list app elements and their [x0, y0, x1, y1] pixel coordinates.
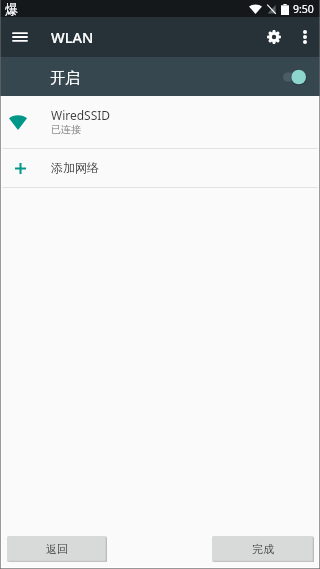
staticText: 返回 [46, 542, 68, 556]
button[interactable]: More options [289, 17, 320, 57]
staticText: 爆 [5, 1, 18, 17]
staticText: 添加网络 [51, 160, 99, 175]
button[interactable]: 完成 [212, 536, 314, 562]
staticText: WiredSSID [51, 107, 111, 123]
button[interactable]: Settings [258, 17, 289, 57]
button[interactable]: Open navigation drawer [0, 17, 40, 57]
staticText: 开启 [50, 69, 80, 88]
staticText: 完成 [252, 542, 274, 556]
staticText: WLAN [51, 27, 94, 47]
button[interactable]: 添加网络 [0, 149, 320, 187]
button[interactable]: 开启 [0, 57, 320, 96]
button[interactable]: WiredSSID [0, 96, 320, 148]
staticText: 9:50 [293, 2, 314, 16]
button[interactable]: 返回 [7, 536, 107, 562]
staticText: 已连接 [51, 123, 81, 136]
